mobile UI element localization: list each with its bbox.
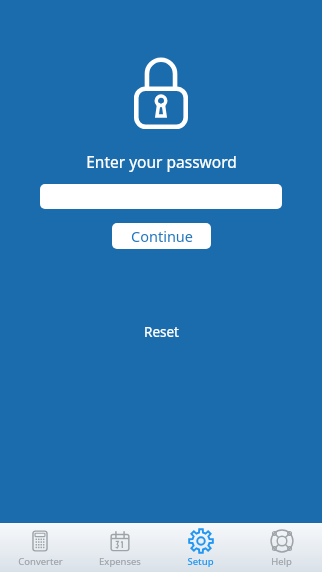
button[interactable]: Password field [40, 184, 282, 209]
staticText: Reset [144, 323, 179, 341]
staticText: Expenses [99, 555, 141, 568]
staticText: Converter [18, 555, 63, 568]
button[interactable]: Help [241, 523, 322, 572]
staticText: Continue [131, 226, 193, 246]
button[interactable]: Expenses [80, 523, 160, 572]
staticText: Help [271, 555, 292, 568]
staticText: Enter your password [86, 151, 237, 172]
button[interactable]: Converter [0, 523, 80, 572]
staticText: Setup [187, 555, 214, 568]
button[interactable]: Reset [124, 319, 198, 345]
button[interactable]: Setup [160, 523, 241, 572]
button[interactable]: Continue [112, 223, 211, 249]
